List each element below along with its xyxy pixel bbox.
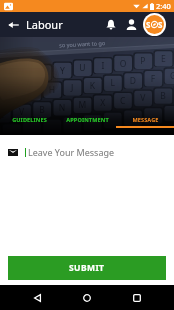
button[interactable]: GUIDELINES [0,109,58,135]
button[interactable]: Profile [121,14,142,35]
button[interactable]: Notifications [100,14,121,35]
button[interactable]: Back [24,285,50,310]
staticText: S [146,19,151,30]
staticText: GUIDELINES [12,116,47,124]
button[interactable]: SUBMIT [8,256,166,280]
button[interactable]: Back [2,14,24,36]
staticText: MESSAGE [132,116,159,124]
staticText: SUBMIT [69,262,105,274]
button[interactable]: APPOINTMENT [58,109,116,135]
staticText: S [158,19,163,30]
staticText: Leave Your Message [28,146,115,158]
staticText: 2:40 [156,1,171,11]
button[interactable]: Home [74,285,100,310]
button[interactable]: SOS emergency [143,13,166,36]
button[interactable]: MESSAGE [116,109,174,135]
staticText: Labour [26,17,63,32]
staticText: APPOINTMENT [66,116,109,124]
button[interactable]: Recent apps [124,285,150,310]
